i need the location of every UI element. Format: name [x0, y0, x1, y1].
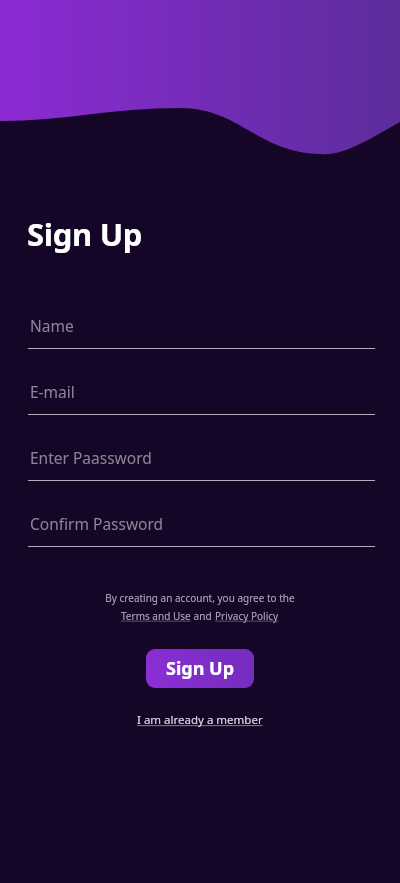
staticText: Confirm Password [30, 513, 164, 534]
button[interactable]: E-mail [0, 368, 400, 434]
button[interactable]: Name [0, 302, 400, 368]
staticText: I am already a member [137, 712, 263, 728]
button[interactable]: Confirm Password [0, 500, 400, 566]
staticText: Name [30, 315, 74, 336]
staticText: Sign Up [166, 656, 235, 681]
staticText: and [191, 609, 215, 623]
staticText: By creating an account, you agree to the [105, 591, 295, 605]
button[interactable]: I am already a member [131, 709, 269, 731]
button[interactable]: Enter Paassword [0, 434, 400, 500]
staticText: Enter Paassword [30, 447, 152, 468]
staticText: Sign Up [27, 213, 143, 255]
staticText: E-mail [30, 381, 75, 402]
button[interactable]: Privacy Policy [215, 609, 279, 623]
button[interactable]: Sign Up [146, 649, 254, 688]
button[interactable]: Terms and Use [121, 609, 191, 623]
